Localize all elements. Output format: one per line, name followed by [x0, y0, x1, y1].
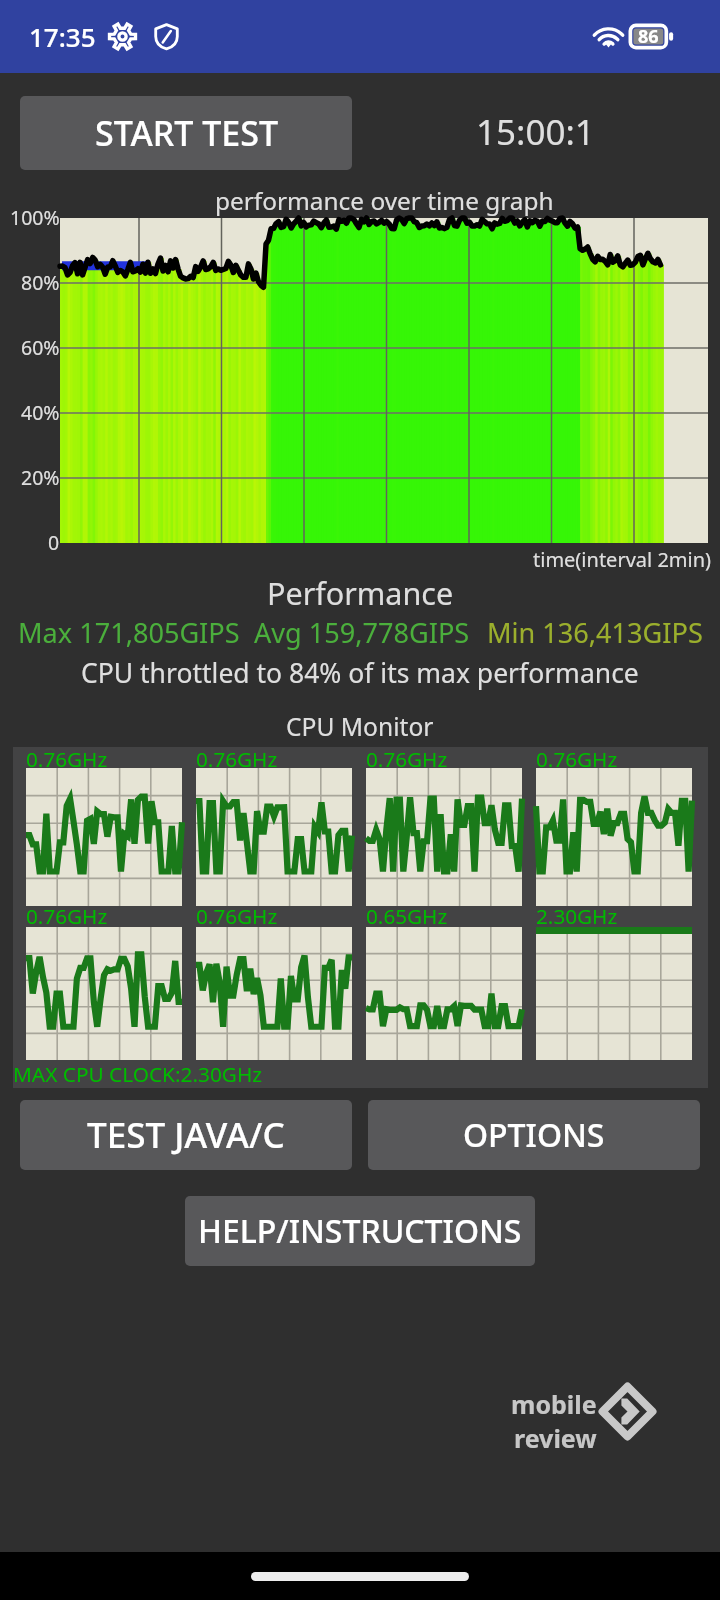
- staticText: START TEST: [95, 110, 278, 156]
- staticText: 40%: [21, 399, 60, 426]
- staticText: 60%: [21, 334, 60, 361]
- staticText: OPTIONS: [463, 1113, 605, 1157]
- staticText: 80%: [21, 269, 60, 296]
- staticText: 0: [48, 529, 60, 556]
- staticText: HELP/INSTRUCTIONS: [198, 1209, 522, 1253]
- other: Security: [153, 23, 180, 50]
- staticText: Avg 159,778GIPS: [254, 614, 470, 651]
- staticText: TEST JAVA/C: [87, 1111, 285, 1159]
- staticText: Min 136,413GIPS: [487, 614, 703, 651]
- staticText: review: [514, 1421, 597, 1455]
- staticText: mobile: [511, 1387, 597, 1421]
- staticText: 100%: [10, 204, 60, 231]
- staticText: CPU throttled to 84% of its max performa…: [81, 655, 639, 691]
- staticText: CPU Monitor: [286, 710, 434, 744]
- other: Settings: [108, 22, 137, 51]
- staticText: Max 171,805GIPS: [18, 614, 240, 651]
- staticText: performance over time graph: [215, 184, 554, 217]
- staticText: 2.30GHz: [536, 902, 618, 930]
- button[interactable]: TEST JAVA/C: [20, 1100, 352, 1170]
- staticText: Performance: [267, 572, 454, 614]
- staticText: 0.65GHz: [366, 902, 448, 930]
- button[interactable]: OPTIONS: [368, 1100, 700, 1170]
- staticText: 0.76GHz: [366, 745, 448, 773]
- staticText: time(interval 2min): [533, 546, 712, 573]
- staticText: 0.76GHz: [26, 902, 108, 930]
- staticText: MAX CPU CLOCK:2.30GHz: [13, 1060, 263, 1088]
- staticText: 86: [638, 24, 659, 49]
- staticText: 0.76GHz: [536, 745, 618, 773]
- staticText: 0.76GHz: [196, 745, 278, 773]
- staticText: 0.76GHz: [26, 745, 108, 773]
- staticText: 0.76GHz: [196, 902, 278, 930]
- staticText: 17:35: [29, 19, 96, 54]
- staticText: 20%: [21, 464, 60, 491]
- staticText: 15:00:1: [476, 108, 595, 156]
- button[interactable]: START TEST: [20, 96, 352, 170]
- button[interactable]: HELP/INSTRUCTIONS: [185, 1196, 535, 1266]
- other: Wifi: [595, 26, 622, 48]
